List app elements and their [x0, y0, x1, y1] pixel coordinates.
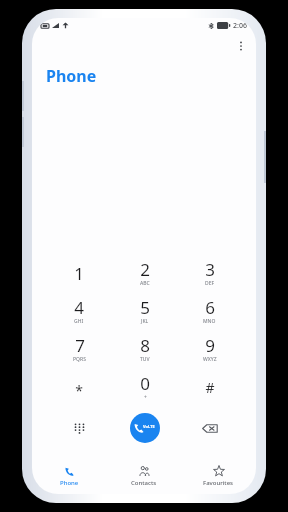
- button[interactable]: More options: [230, 35, 252, 57]
- button[interactable]: 9: [177, 332, 242, 366]
- staticText: VoLTE: [143, 424, 155, 429]
- staticText: PQRS: [73, 356, 86, 363]
- staticText: #: [205, 378, 215, 397]
- staticText: 7: [75, 334, 85, 357]
- staticText: +: [144, 394, 147, 401]
- button[interactable]: 1: [46, 256, 112, 290]
- button[interactable]: 3: [177, 256, 242, 290]
- staticText: 4: [74, 296, 84, 319]
- button[interactable]: Keypad: [46, 411, 112, 445]
- staticText: GHI: [74, 318, 84, 325]
- staticText: Phone: [46, 65, 97, 87]
- button[interactable]: Favourites: [181, 458, 256, 494]
- staticText: TUV: [140, 356, 150, 363]
- staticText: ABC: [140, 280, 150, 287]
- button[interactable]: *: [46, 370, 112, 404]
- button[interactable]: #: [177, 370, 242, 404]
- button[interactable]: Contacts: [106, 458, 181, 494]
- staticText: Contacts: [131, 479, 157, 487]
- staticText: MNO: [203, 318, 216, 325]
- staticText: 2: [140, 258, 150, 281]
- button[interactable]: 7: [46, 332, 112, 366]
- button[interactable]: 6: [177, 294, 242, 328]
- staticText: 5: [140, 296, 150, 319]
- button[interactable]: 0: [112, 370, 177, 404]
- staticText: *: [75, 381, 83, 400]
- button[interactable]: 8: [112, 332, 177, 366]
- staticText: 0: [140, 372, 150, 395]
- button[interactable]: 5: [112, 294, 177, 328]
- button[interactable]: Backspace: [177, 411, 242, 445]
- button[interactable]: 4: [46, 294, 112, 328]
- staticText: 8: [140, 334, 150, 357]
- staticText: 1: [74, 262, 84, 285]
- staticText: JKL: [141, 318, 149, 325]
- button[interactable]: 2: [112, 256, 177, 290]
- staticText: WXYZ: [203, 356, 217, 363]
- staticText: 2:06: [233, 21, 247, 31]
- staticText: Phone: [60, 479, 79, 487]
- staticText: 3: [205, 258, 215, 281]
- staticText: 6: [205, 296, 215, 319]
- staticText: Favourites: [203, 479, 234, 487]
- button[interactable]: Phone: [32, 458, 106, 494]
- staticText: 9: [205, 334, 215, 357]
- staticText: DEF: [205, 280, 215, 287]
- button[interactable]: Call: [130, 413, 160, 443]
